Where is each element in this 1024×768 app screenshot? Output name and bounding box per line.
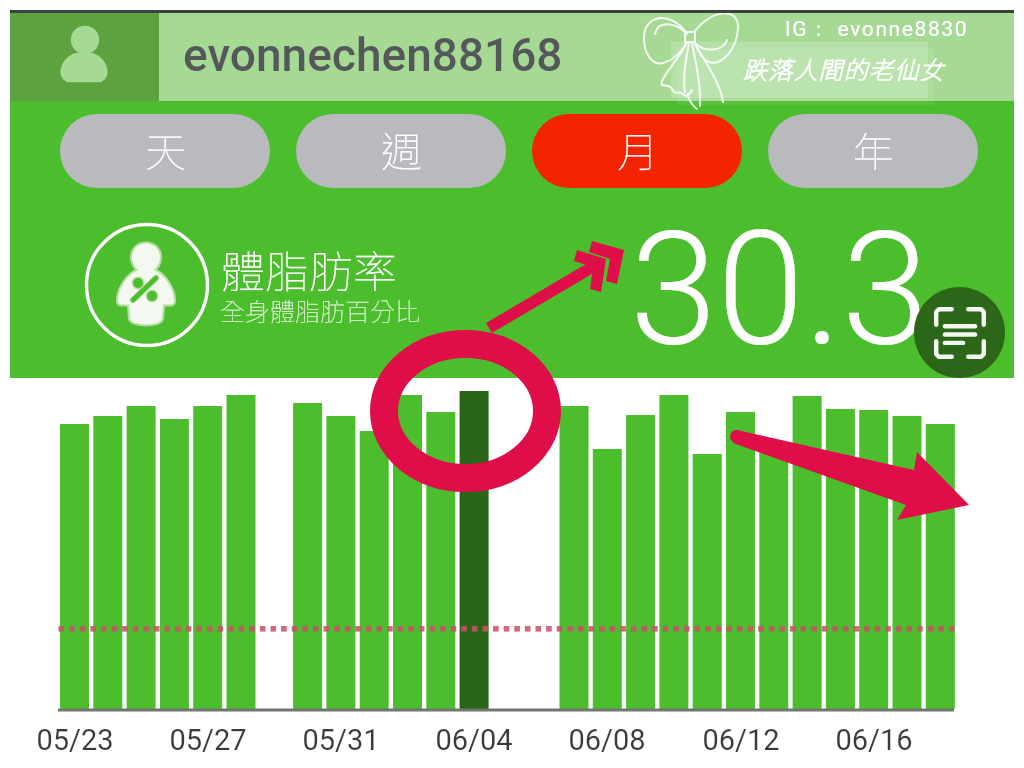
button[interactable]: 天 [60, 114, 270, 188]
staticText: 週 [381, 119, 422, 178]
button[interactable]: Profile [10, 10, 159, 101]
staticText: evonnechen88168 [183, 28, 563, 82]
staticText: IG： evonne8830 [785, 16, 969, 42]
staticText: 天 [145, 119, 186, 178]
staticText: 30.3 [630, 197, 929, 381]
staticText: 05/27 [169, 723, 247, 757]
staticText: 06/16 [835, 723, 913, 757]
staticText: 06/08 [568, 723, 646, 757]
staticText: 05/31 [302, 723, 380, 757]
staticText: 跌落人間的老仙女 [743, 51, 945, 86]
staticText: 年 [853, 119, 894, 178]
button[interactable]: 年 [768, 114, 978, 188]
button[interactable]: 週 [296, 114, 506, 188]
staticText: 月 [617, 119, 658, 178]
button[interactable]: 月 [532, 114, 742, 188]
button[interactable]: Scan document [914, 287, 1005, 378]
staticText: 05/23 [36, 723, 114, 757]
staticText: 全身體脂肪百分比 [220, 292, 421, 328]
staticText: 體脂肪率 [221, 237, 397, 301]
staticText: 06/12 [702, 723, 780, 757]
staticText: 06/04 [435, 723, 513, 757]
